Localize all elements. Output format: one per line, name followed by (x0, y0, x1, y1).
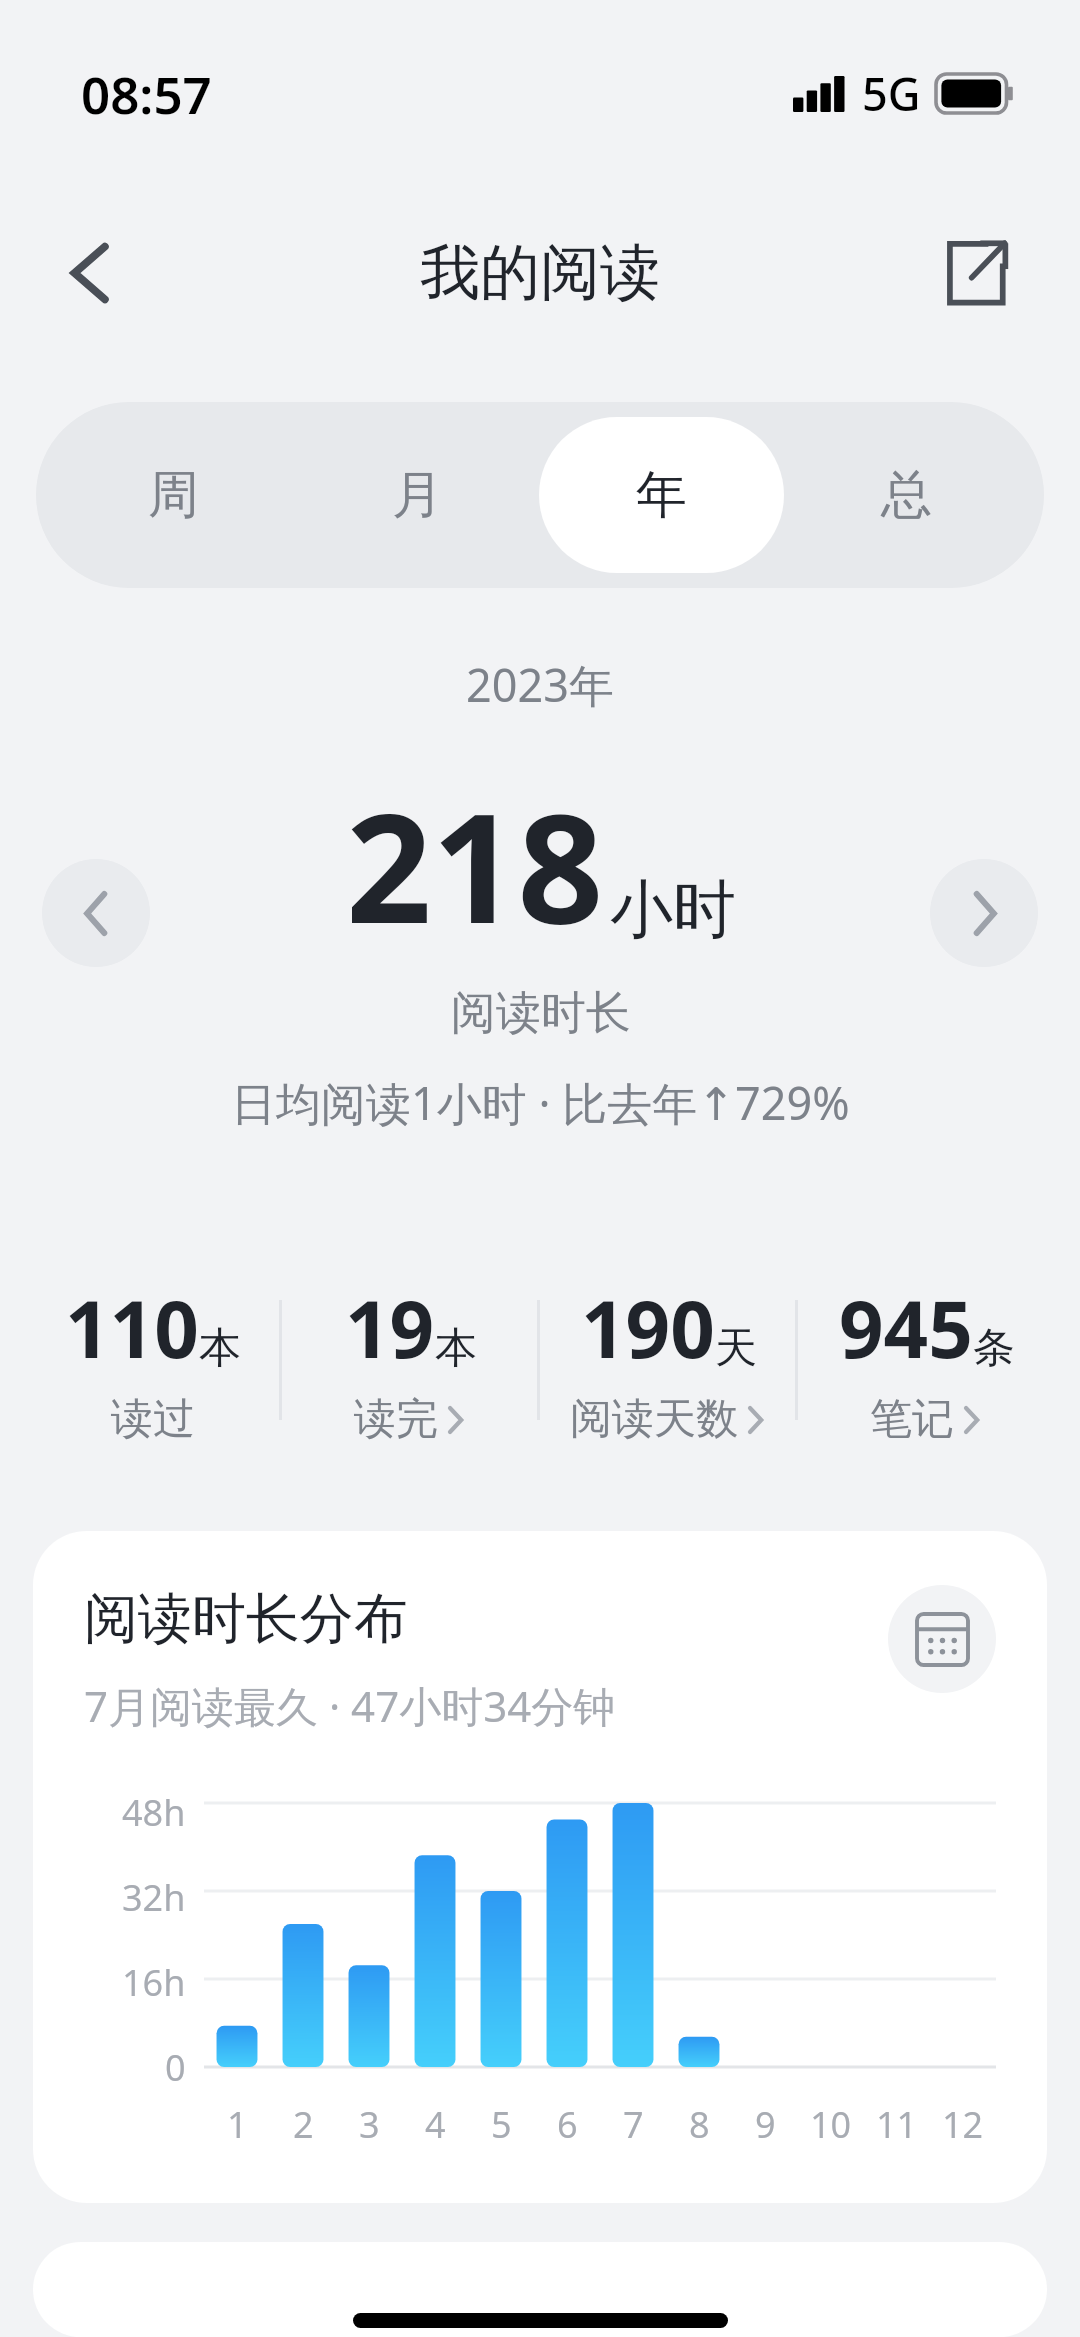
staticText: 日均阅读1小时 · 比去年↑729% (231, 1072, 850, 1133)
staticText: 本 (435, 1322, 477, 1375)
staticText: 10 (810, 2100, 852, 2149)
button[interactable]: 月 (295, 417, 539, 573)
staticText: 读过 (111, 1393, 195, 1446)
staticText: 3 (359, 2100, 380, 2149)
button[interactable]: Share (900, 198, 1050, 348)
button[interactable]: 945 (798, 1243, 1056, 1477)
staticText: 阅读时长分布 (84, 1585, 408, 1653)
staticText: 读完 (354, 1393, 438, 1446)
staticText: 阅读时长 (451, 985, 631, 1042)
staticText: 19 (345, 1275, 435, 1381)
button[interactable]: 年 (539, 417, 784, 573)
staticText: 7 (623, 2100, 644, 2149)
staticText: 7月阅读最久 · 47小时34分钟 (84, 1677, 616, 1734)
staticText: 945 (839, 1275, 973, 1381)
staticText: 11 (876, 2100, 918, 2149)
staticText: 5G (862, 63, 921, 124)
staticText: 6 (557, 2100, 578, 2149)
staticText: 190 (581, 1275, 715, 1381)
staticText: 2023年 (0, 654, 1080, 715)
button[interactable]: Previous (42, 859, 150, 967)
button[interactable]: Next (930, 859, 1038, 967)
button[interactable]: 110 (24, 1243, 282, 1477)
staticText: 阅读天数 (570, 1393, 738, 1446)
staticText: 12 (942, 2100, 984, 2149)
staticText: 本 (199, 1322, 241, 1375)
staticText: 我的阅读 (420, 235, 660, 311)
staticText: 小时 (610, 870, 736, 949)
staticText: 16h (122, 1958, 186, 2007)
button[interactable]: 周 (51, 417, 295, 573)
staticText: 08:57 (81, 59, 212, 128)
staticText: 8 (689, 2100, 710, 2149)
staticText: 天 (715, 1322, 757, 1375)
staticText: 9 (755, 2100, 776, 2149)
staticText: 周 (148, 463, 199, 527)
staticText: 0 (165, 2043, 186, 2088)
staticText: 条 (973, 1322, 1015, 1375)
staticText: 110 (65, 1275, 199, 1381)
button[interactable]: Calendar (888, 1585, 996, 1693)
staticText: 总 (881, 463, 932, 527)
staticText: 32h (122, 1873, 186, 1922)
button[interactable]: 19 (282, 1243, 540, 1477)
button[interactable]: 总 (784, 417, 1029, 573)
staticText: 4 (425, 2100, 446, 2149)
button[interactable]: Back (18, 198, 168, 348)
staticText: 2 (293, 2100, 314, 2149)
staticText: 48h (122, 1788, 186, 1837)
staticText: 笔记 (870, 1393, 954, 1446)
staticText: 1 (227, 2100, 248, 2149)
button[interactable]: 190 (540, 1243, 798, 1477)
staticText: 月 (392, 463, 443, 527)
staticText: 5 (491, 2100, 512, 2149)
staticText: 218 (346, 763, 604, 967)
staticText: 年 (636, 463, 687, 527)
